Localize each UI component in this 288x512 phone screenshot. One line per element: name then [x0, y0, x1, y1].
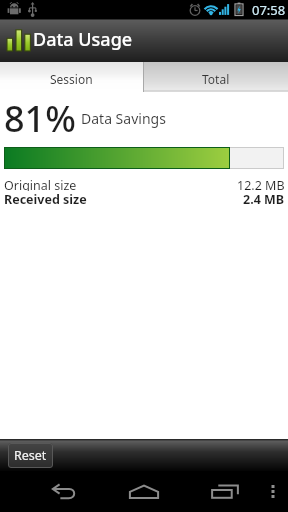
staticText: 07:58	[252, 1, 286, 19]
button[interactable]: Home	[112, 471, 176, 512]
button[interactable]: Recent apps	[193, 471, 257, 512]
staticText: Session	[50, 71, 93, 87]
button[interactable]: More options	[258, 471, 288, 512]
button[interactable]: Reset	[8, 443, 53, 468]
button[interactable]: Total	[144, 62, 288, 92]
button[interactable]: Session	[0, 62, 143, 92]
staticText: Data Usage	[33, 27, 133, 52]
staticText: Original size	[4, 177, 77, 191]
button[interactable]: Back	[32, 471, 96, 512]
staticText: Reset	[14, 447, 47, 464]
staticText: Received size	[4, 191, 87, 205]
staticText: 12.2 MB	[237, 177, 285, 191]
staticText: Total	[202, 71, 230, 87]
staticText: 2.4 MB	[243, 191, 285, 205]
staticText: 81%	[4, 94, 76, 134]
staticText: Data Savings	[81, 109, 166, 128]
